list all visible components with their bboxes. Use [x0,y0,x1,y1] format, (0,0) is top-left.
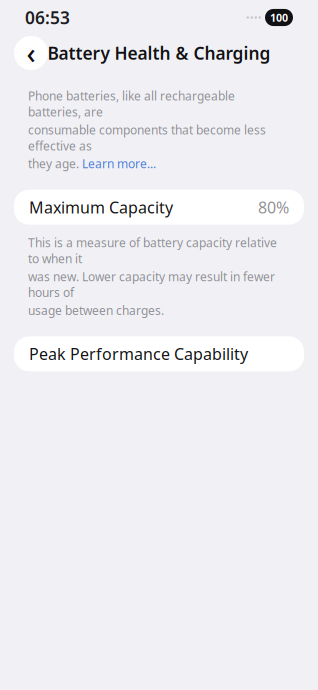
button[interactable]: Back [14,36,48,70]
staticText: usage between charges. [28,302,164,318]
button[interactable]: Peak Performance Capability [14,336,304,371]
staticText: Maximum Capacity [29,197,173,218]
staticText: 06:53 [25,6,70,29]
staticText: 100 [270,10,288,25]
staticText: ‹ [26,34,35,72]
staticText: This is a measure of battery capacity re… [28,235,277,267]
staticText: Learn more... [82,156,156,172]
button[interactable]: Learn more... [82,156,156,172]
staticText: Peak Performance Capability [29,343,248,364]
staticText: consumable components that become less e… [28,122,266,154]
staticText: 80% [258,197,289,218]
staticText: Phone batteries, like all rechargeable b… [28,88,235,120]
button[interactable]: Maximum Capacity [14,190,304,225]
staticText: they age. [28,156,82,172]
staticText: Battery Health & Charging [47,41,270,64]
staticText: was new. Lower capacity may result in fe… [28,268,275,300]
